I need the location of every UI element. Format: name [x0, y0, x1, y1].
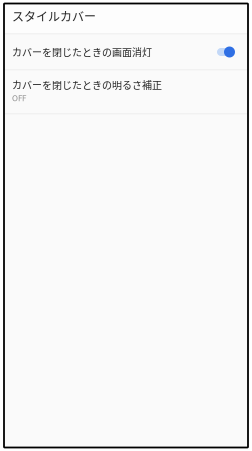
button[interactable]: カバーを閉じたときの画面消灯 [4, 34, 248, 69]
staticText: カバーを閉じたときの画面消灯 [12, 45, 152, 59]
button[interactable]: カバーを閉じたときの明るさ補正 [4, 70, 248, 113]
staticText: スタイルカバー [12, 7, 96, 25]
staticText: OFF [12, 92, 26, 103]
staticText: カバーを閉じたときの明るさ補正 [12, 77, 162, 92]
